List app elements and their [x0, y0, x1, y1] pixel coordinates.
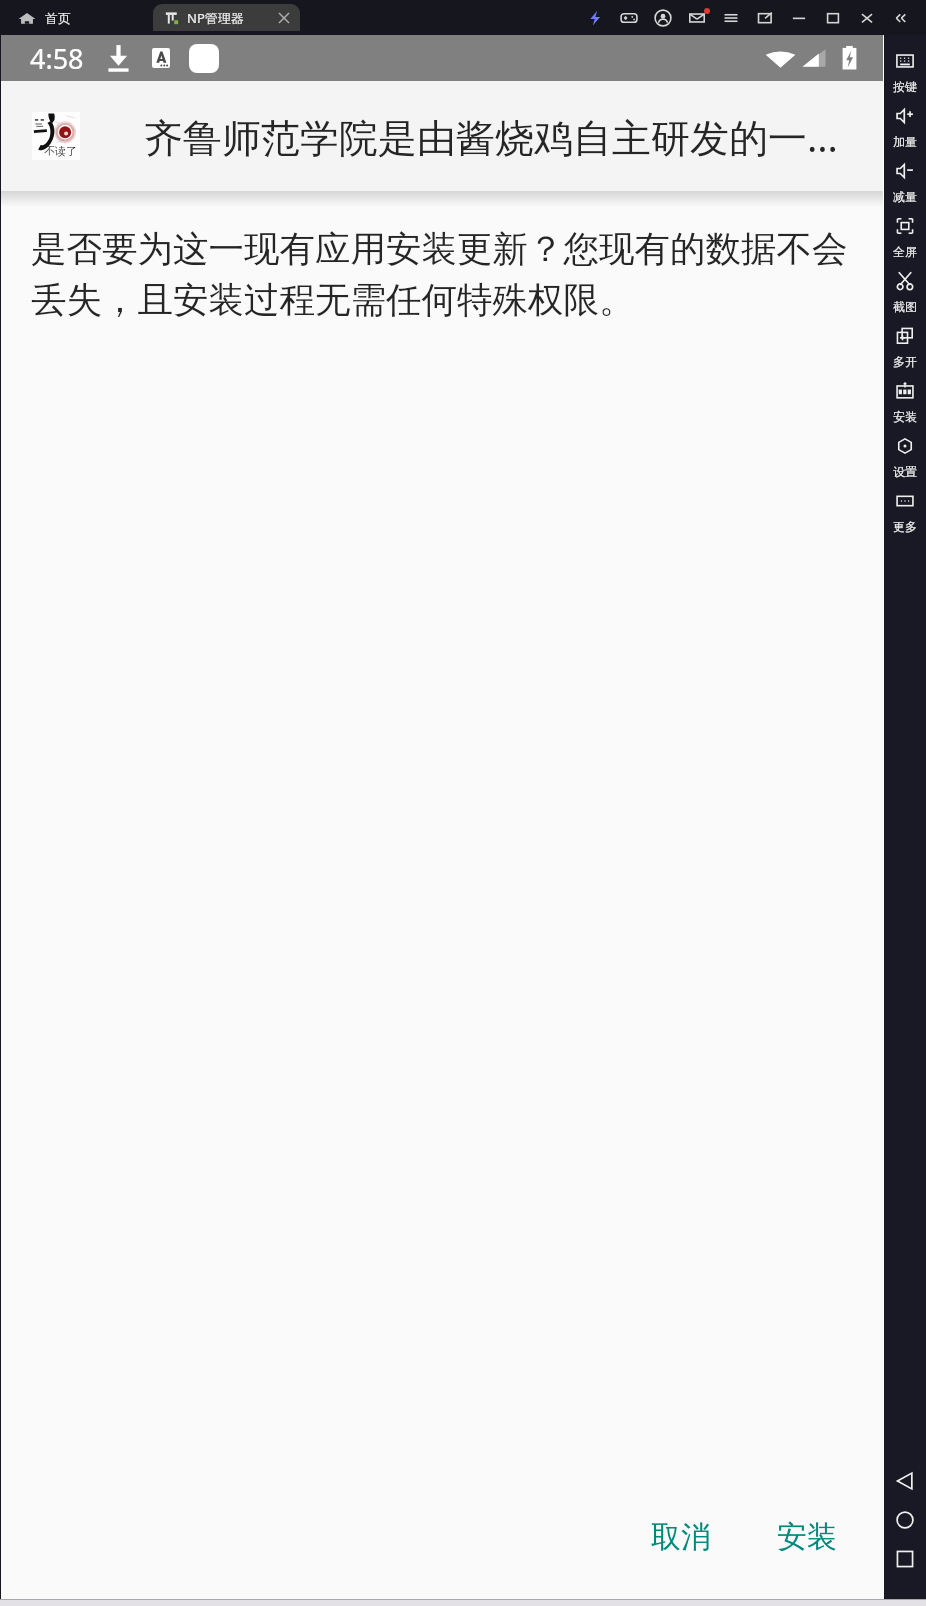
- staticText: 齐鲁师范学院是由酱烧鸡自主研发的一…: [144, 110, 838, 163]
- button[interactable]: 首页: [18, 0, 71, 35]
- button[interactable]: Games: [612, 1, 646, 35]
- staticText: 截图: [893, 299, 917, 314]
- button[interactable]: 按键: [884, 46, 926, 101]
- button[interactable]: 安装: [757, 1506, 857, 1568]
- button[interactable]: 更多: [884, 486, 926, 541]
- button[interactable]: Minimize: [782, 1, 816, 35]
- staticText: 安装: [777, 1518, 837, 1556]
- button[interactable]: Back: [894, 1470, 916, 1492]
- staticText: 不读了: [44, 144, 77, 158]
- button[interactable]: 减量: [884, 156, 926, 211]
- button[interactable]: Home: [894, 1509, 916, 1531]
- button[interactable]: Detach: [748, 1, 782, 35]
- button[interactable]: 安装: [884, 376, 926, 431]
- button[interactable]: Maximize: [816, 1, 850, 35]
- button[interactable]: Account: [646, 1, 680, 35]
- staticText: 减量: [893, 189, 917, 204]
- button[interactable]: Menu: [714, 1, 748, 35]
- button[interactable]: Close: [850, 1, 884, 35]
- staticText: 取消: [651, 1518, 711, 1556]
- button[interactable]: 取消: [631, 1506, 731, 1568]
- button[interactable]: Collapse: [884, 1, 918, 35]
- staticText: 安装: [893, 409, 917, 424]
- button[interactable]: 多开: [884, 321, 926, 376]
- staticText: 按键: [893, 79, 917, 94]
- button[interactable]: Boost: [578, 1, 612, 35]
- button[interactable]: Close tab: [273, 7, 295, 29]
- staticText: 多开: [893, 354, 917, 369]
- button[interactable]: 设置: [884, 431, 926, 486]
- staticText: 全屏: [893, 244, 917, 259]
- staticText: 首页: [45, 10, 71, 26]
- staticText: 设置: [893, 464, 917, 479]
- staticText: 4:58: [30, 40, 84, 77]
- staticText: 更多: [893, 519, 917, 534]
- button[interactable]: 加量: [884, 101, 926, 156]
- button[interactable]: 全屏: [884, 211, 926, 266]
- staticText: 是否要为这一现有应用安装更新？您现有的数据不会丢失，且安装过程无需任何特殊权限。: [31, 227, 879, 323]
- staticText: 加量: [893, 134, 917, 149]
- button[interactable]: 截图: [884, 266, 926, 321]
- button[interactable]: Recents: [894, 1548, 916, 1570]
- staticText: NP管理器: [187, 9, 244, 27]
- button[interactable]: Mail: [680, 1, 714, 35]
- button[interactable]: NP管理器: [153, 4, 300, 31]
